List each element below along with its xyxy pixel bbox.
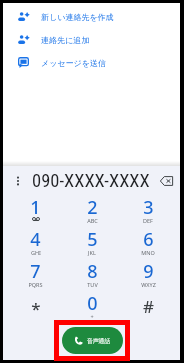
staticText: DEF: [143, 217, 153, 224]
staticText: 6: [143, 227, 154, 252]
staticText: 音声通話: [87, 337, 111, 344]
button[interactable]: メッセージを送信: [3, 51, 180, 74]
other: Backspace: [160, 176, 173, 186]
staticText: 090-XXXX-XXXX: [32, 170, 150, 192]
staticText: 4: [30, 227, 41, 252]
button[interactable]: 音声通話: [62, 327, 123, 354]
staticText: 2: [87, 195, 98, 220]
staticText: 9: [143, 259, 154, 284]
button[interactable]: 4: [7, 228, 64, 260]
staticText: 5: [87, 227, 98, 252]
button[interactable]: 新しい連絡先を作成: [3, 5, 180, 28]
staticText: 7: [30, 259, 41, 284]
staticText: WXYZ: [141, 281, 156, 288]
staticText: 8: [87, 259, 98, 284]
staticText: #: [143, 295, 154, 318]
button[interactable]: 3: [120, 196, 176, 228]
button[interactable]: 連絡先に追加: [3, 28, 180, 51]
button[interactable]: 1: [7, 196, 64, 228]
staticText: GHI: [31, 249, 41, 256]
other: More options: [13, 176, 23, 186]
staticText: JKL: [88, 249, 96, 256]
button[interactable]: *: [7, 292, 64, 324]
staticText: PQRS: [28, 281, 43, 288]
button[interactable]: 6: [120, 228, 176, 260]
button[interactable]: 8: [64, 260, 120, 292]
button[interactable]: #: [120, 292, 176, 324]
button[interactable]: 5: [64, 228, 120, 260]
button[interactable]: 7: [7, 260, 64, 292]
staticText: TUV: [87, 281, 98, 288]
button[interactable]: 9: [120, 260, 176, 292]
staticText: メッセージを送信: [41, 58, 106, 68]
button[interactable]: 0: [64, 292, 120, 324]
staticText: +: [90, 313, 94, 320]
staticText: *: [31, 297, 41, 320]
staticText: 0: [87, 291, 98, 316]
staticText: 連絡先に追加: [41, 35, 90, 45]
staticText: MNO: [141, 249, 155, 256]
staticText: 3: [143, 195, 154, 220]
button[interactable]: 2: [64, 196, 120, 228]
staticText: 1: [30, 195, 41, 220]
staticText: ABC: [87, 217, 98, 224]
staticText: 新しい連絡先を作成: [41, 12, 114, 22]
